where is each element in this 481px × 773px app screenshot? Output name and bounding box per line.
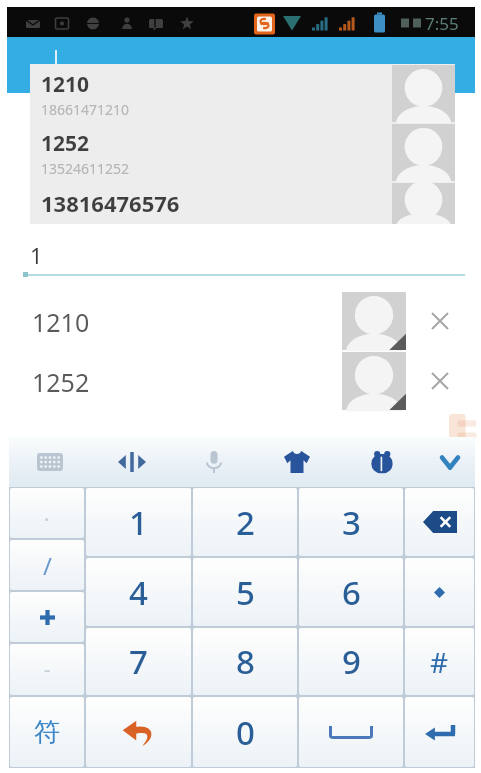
button[interactable]: Slash [10,540,84,590]
button[interactable]: 1210 [30,64,455,123]
staticText: 1252 [32,365,90,399]
staticText: 5 [236,570,255,615]
button[interactable]: Minus [10,644,84,695]
button[interactable]: Hide keyboard [430,437,470,487]
button[interactable]: Emoji [362,437,402,487]
button[interactable]: 6 [299,558,403,626]
button[interactable]: Theme [277,437,317,487]
button[interactable]: 13816476576 [30,182,455,224]
staticText: - [44,656,51,683]
button[interactable]: Space [299,697,403,767]
button[interactable]: 4 [86,558,191,626]
button[interactable]: 3 [299,488,403,556]
staticText: 0 [236,710,255,755]
button[interactable]: Keyboard layout [30,437,70,487]
staticText: 7:55 [425,12,459,35]
staticText: 1210 [32,305,90,339]
staticText: 1 [30,240,43,270]
button[interactable]: Enter [405,697,474,767]
button[interactable]: 1252 [30,123,455,182]
staticText: 8 [236,639,255,684]
button[interactable]: 1210 [0,291,481,351]
staticText: # [430,643,449,681]
button[interactable]: 1 [86,488,191,556]
staticText: / [43,549,52,582]
staticText: . [44,500,50,527]
button[interactable]: 2 [193,488,297,556]
staticText: 18661471210 [41,100,130,119]
button[interactable]: 5 [193,558,297,626]
button[interactable]: Remove 1252 [424,365,456,397]
button[interactable]: Plus [10,592,84,642]
staticText: 1 [129,500,148,545]
staticText: 7 [129,639,148,684]
button[interactable]: 7 [86,628,191,695]
staticText: 符 [34,716,60,749]
button[interactable]: 1252 [0,351,481,411]
button[interactable]: 9 [299,628,403,695]
button[interactable]: Symbols [10,697,84,767]
staticText: 9 [342,639,361,684]
button[interactable]: Move cursor [112,437,152,487]
staticText: 2 [236,500,255,545]
button[interactable]: Dot [405,558,474,626]
button[interactable]: Hash [405,628,474,695]
staticText: 1210 [41,70,90,99]
staticText: 6 [342,570,361,615]
button[interactable]: Comma [10,488,84,538]
button[interactable]: Undo [86,697,191,767]
staticText: 4 [129,570,148,615]
button[interactable]: Backspace [405,488,474,556]
staticText: 13816476576 [41,188,180,218]
button[interactable]: 0 [193,697,297,767]
button[interactable]: 8 [193,628,297,695]
button[interactable]: Remove 1210 [424,305,456,337]
button[interactable]: Voice input [194,437,234,487]
staticText: 13524611252 [41,159,130,178]
staticText: 1252 [41,129,90,158]
staticText: 3 [342,500,361,545]
